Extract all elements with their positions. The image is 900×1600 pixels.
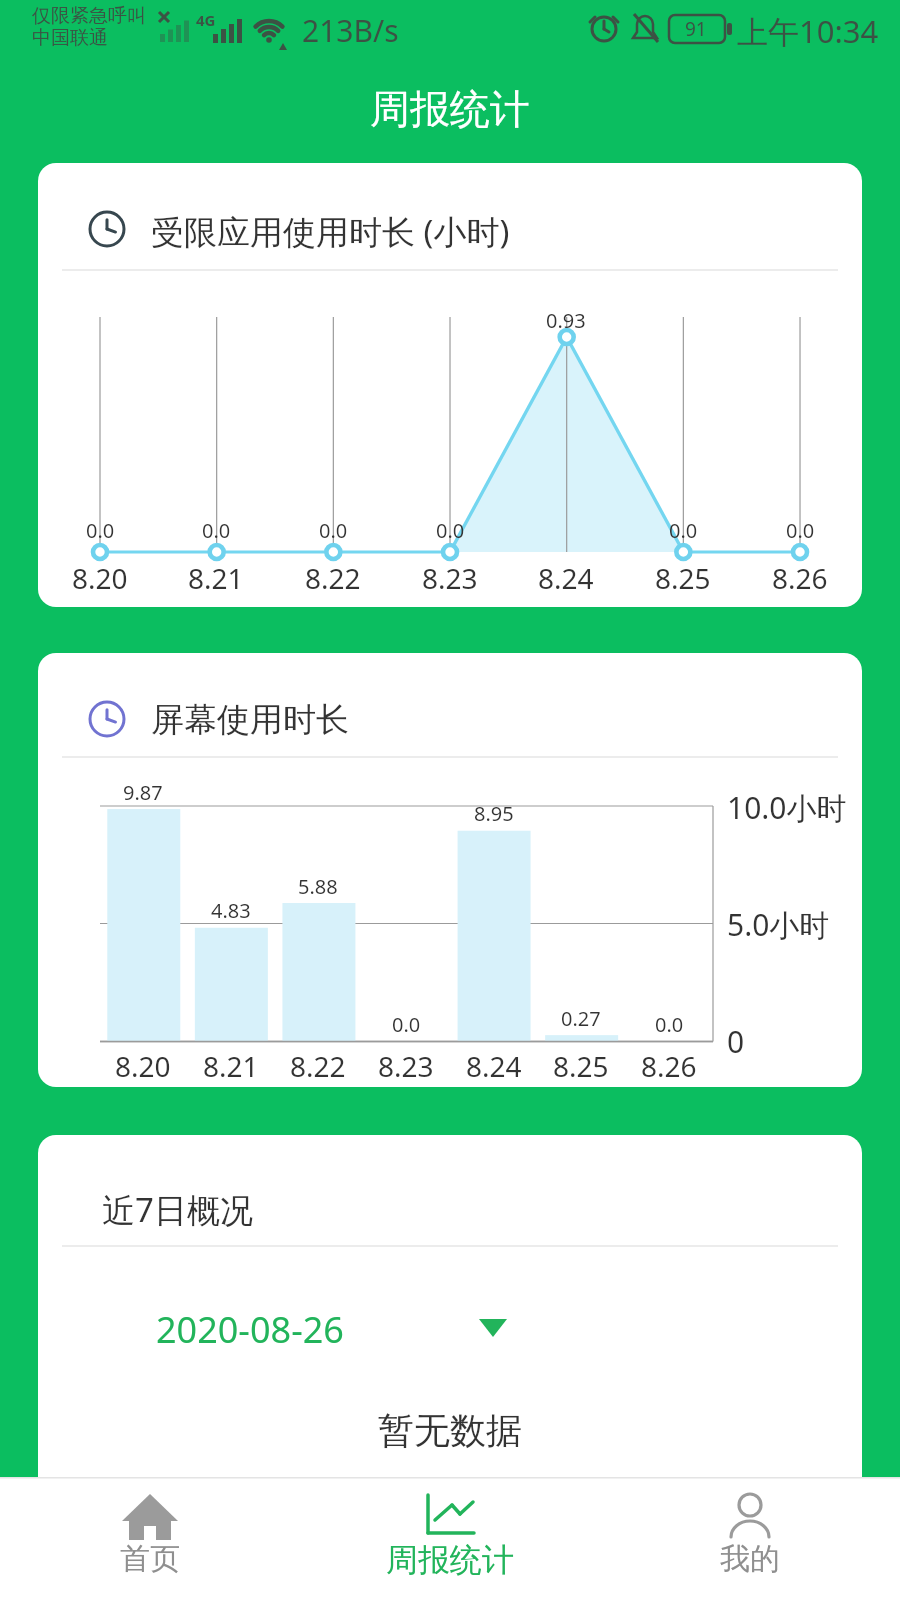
staticText: 0.0 [392, 1011, 421, 1038]
staticText: 213B/s [302, 10, 399, 51]
staticText: 0.93 [546, 307, 586, 334]
staticText: 中国联通 [32, 26, 108, 50]
staticText: 8.20 [72, 559, 128, 597]
staticText: 4G [196, 10, 216, 30]
staticText: 8.23 [378, 1047, 434, 1085]
staticText: 仅限紧急呼叫 [32, 4, 146, 28]
staticText: 8.21 [203, 1047, 259, 1085]
staticText: 9.87 [123, 779, 163, 806]
button[interactable]: 我的 [600, 1477, 900, 1600]
staticText: 8.23 [422, 559, 478, 597]
staticText: 8.24 [538, 559, 594, 597]
staticText: 8.22 [305, 559, 361, 597]
staticText: 我的 [720, 1540, 780, 1578]
staticText: 周报统计 [370, 84, 530, 134]
staticText: 0.0 [786, 517, 815, 544]
staticText: 上午10:34 [737, 10, 879, 52]
staticText: 0.27 [561, 1005, 601, 1032]
staticText: 4.83 [211, 897, 251, 924]
staticText: 5.88 [298, 873, 338, 900]
staticText: 8.25 [655, 559, 711, 597]
staticText: 8.22 [290, 1047, 346, 1085]
staticText: 8.26 [772, 559, 828, 597]
staticText: 5.0小时 [727, 904, 830, 945]
staticText: 8.20 [115, 1047, 171, 1085]
staticText: 首页 [120, 1540, 180, 1578]
staticText: 受限应用使用时长 (小时) [151, 209, 510, 254]
staticText: 近7日概况 [102, 1187, 253, 1232]
staticText: 8.21 [188, 559, 244, 597]
staticText: 0.0 [436, 517, 465, 544]
staticText: 屏幕使用时长 [151, 699, 349, 741]
staticText: 0.0 [86, 517, 115, 544]
staticText: 0.0 [669, 517, 698, 544]
staticText: 91 [685, 16, 707, 42]
staticText: 0.0 [202, 517, 231, 544]
staticText: 8.95 [474, 800, 514, 827]
button[interactable]: 周报统计 [300, 1477, 600, 1600]
staticText: 8.26 [641, 1047, 697, 1085]
button[interactable] [158, 1295, 558, 1355]
staticText: 2020-08-26 [156, 1305, 344, 1354]
staticText: 8.25 [553, 1047, 609, 1085]
staticText: 0.0 [319, 517, 348, 544]
staticText: 周报统计 [386, 1540, 514, 1580]
staticText: 8.24 [466, 1047, 522, 1085]
button[interactable]: 首页 [0, 1477, 300, 1600]
staticText: 0.0 [655, 1011, 684, 1038]
staticText: 10.0小时 [727, 787, 847, 828]
staticText: 暂无数据 [378, 1408, 522, 1453]
staticText: 0 [727, 1021, 745, 1062]
